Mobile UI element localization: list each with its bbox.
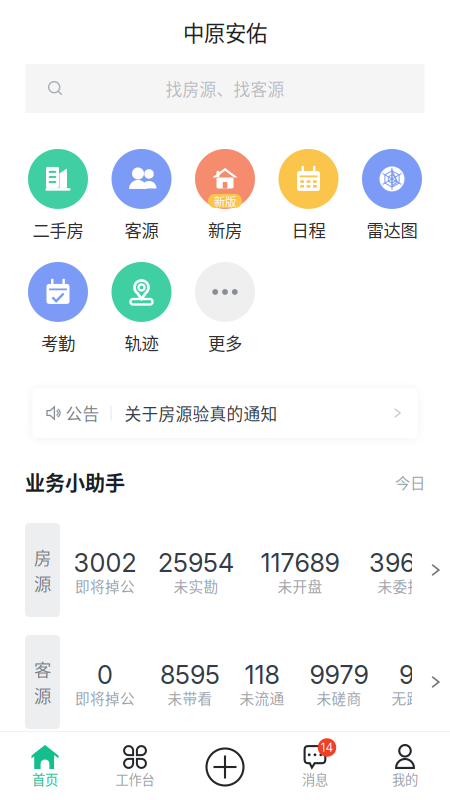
staticText: 雷达图: [366, 217, 417, 242]
staticText: 业务小助手: [25, 467, 125, 496]
staticText: 源: [34, 570, 51, 596]
staticText: 未开盘: [277, 575, 322, 596]
button[interactable]: 公告: [32, 388, 417, 438]
button[interactable]: 工作台: [90, 732, 180, 800]
staticText: 118: [244, 660, 279, 690]
button[interactable]: 客源: [100, 154, 183, 237]
staticText: 考勤: [41, 330, 75, 355]
staticText: 关于房源验真的通知: [124, 401, 277, 425]
staticText: 25954: [158, 548, 234, 578]
staticText: 117689: [260, 548, 339, 578]
staticText: 3960: [369, 548, 431, 578]
staticText: 未实勘: [173, 575, 218, 596]
staticText: 客源: [124, 217, 158, 242]
staticText: 9979: [309, 660, 368, 690]
staticText: 无跟进: [391, 687, 436, 708]
staticText: 即将掉公: [75, 687, 135, 708]
staticText: 消息: [302, 769, 328, 789]
staticText: 今日: [395, 471, 425, 493]
staticText: 客: [34, 656, 51, 681]
button[interactable]: 日程: [267, 154, 350, 237]
staticText: 未流通: [239, 687, 284, 708]
staticText: 找房源、找客源: [165, 76, 284, 100]
button[interactable]: 更多: [183, 267, 267, 350]
staticText: 3002: [73, 548, 136, 578]
staticText: 14: [320, 740, 333, 755]
staticText: 未带看: [167, 687, 212, 708]
button[interactable]: 考勤: [16, 267, 100, 350]
staticText: 我的: [392, 769, 418, 789]
staticText: 99: [399, 660, 429, 690]
staticText: 新版: [214, 193, 236, 209]
staticText: 中原安佑: [183, 17, 267, 47]
staticText: 新房: [208, 217, 242, 242]
staticText: 更多: [208, 330, 242, 355]
staticText: 轨迹: [124, 330, 158, 355]
staticText: 源: [34, 682, 51, 708]
staticText: 二手房: [32, 217, 83, 242]
staticText: 0: [97, 660, 113, 690]
staticText: 房: [34, 544, 51, 569]
staticText: 日程: [291, 217, 325, 242]
staticText: 公告: [65, 401, 99, 425]
staticText: 8595: [160, 660, 220, 690]
button[interactable]: 雷达图: [350, 154, 434, 237]
button[interactable]: 14: [270, 732, 360, 800]
button[interactable]: 二手房: [16, 154, 100, 237]
staticText: 未磋商: [316, 687, 361, 708]
staticText: 工作台: [115, 769, 154, 789]
button[interactable]: 客: [0, 635, 450, 729]
button[interactable]: 我的: [360, 732, 450, 800]
staticText: 即将掉公: [75, 575, 135, 596]
staticText: 首页: [32, 769, 58, 789]
button[interactable]: 首页: [0, 732, 90, 800]
staticText: 未委托: [377, 575, 422, 596]
button[interactable]: 新版: [183, 154, 267, 237]
button[interactable]: 新建: [180, 732, 270, 800]
button[interactable]: 房: [0, 523, 450, 617]
button[interactable]: 轨迹: [100, 267, 183, 350]
